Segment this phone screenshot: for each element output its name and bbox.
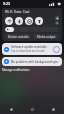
staticText: Tap to download and install bbox=[11, 49, 45, 53]
staticText: 9:23 bbox=[3, 1, 11, 6]
button[interactable]: Device controls bbox=[5, 34, 31, 39]
button[interactable]: Bluetooth bbox=[15, 17, 23, 25]
button[interactable]: Media output bbox=[33, 34, 59, 39]
button[interactable]: Manage notifications bbox=[2, 68, 30, 72]
button[interactable]: No problem with background sync enabled bbox=[2, 57, 62, 66]
staticText: Wi-Fi Data Cast bbox=[5, 10, 30, 14]
staticText: Media output bbox=[37, 35, 56, 39]
button[interactable]: Wi-Fi bbox=[5, 17, 13, 25]
button[interactable]: Recents bbox=[43, 105, 64, 114]
button[interactable]: Settings bbox=[55, 21, 59, 25]
staticText: Software update available bbox=[11, 45, 47, 49]
button[interactable]: Do not disturb bbox=[25, 17, 33, 25]
button[interactable] bbox=[5, 27, 59, 32]
button[interactable]: Add tile bbox=[55, 16, 59, 20]
button[interactable]: Expand bbox=[53, 46, 60, 53]
button[interactable]: Software update available bbox=[2, 43, 62, 55]
staticText: Manage notifications bbox=[2, 68, 30, 72]
staticText: Device controls bbox=[8, 35, 29, 39]
button[interactable]: Back bbox=[0, 105, 22, 114]
staticText: No problem with background sync enabled bbox=[11, 60, 60, 64]
button[interactable]: Home bbox=[22, 105, 43, 114]
button[interactable]: Flashlight bbox=[35, 17, 43, 25]
